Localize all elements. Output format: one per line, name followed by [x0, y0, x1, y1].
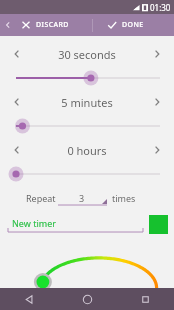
button[interactable]: New timer — [8, 213, 143, 235]
staticText: DISCARD — [36, 20, 69, 30]
button[interactable]: Recent apps — [116, 288, 174, 310]
button[interactable]: Decrease — [0, 88, 34, 116]
button[interactable]: Decrease — [0, 40, 34, 68]
button[interactable]: Home — [58, 288, 116, 310]
button[interactable]: Decrease — [0, 136, 34, 164]
button[interactable]: Increase — [140, 88, 174, 116]
button[interactable]: DONE — [99, 14, 174, 36]
button[interactable]: Increase — [140, 136, 174, 164]
button[interactable]: Back — [0, 288, 58, 310]
staticText: 0 hours — [67, 143, 107, 158]
staticText: 3 — [79, 192, 85, 204]
staticText: DONE — [122, 20, 144, 30]
button[interactable]: Increase — [140, 40, 174, 68]
staticText: Repeat — [26, 192, 56, 204]
button[interactable]: DISCARD — [0, 14, 75, 36]
button[interactable]: 5 minutes — [0, 116, 174, 136]
button[interactable]: 3 — [56, 189, 108, 207]
staticText: 5 minutes — [61, 95, 113, 110]
button[interactable]: 0 hours — [0, 164, 174, 184]
button[interactable]: 30 seconds — [0, 68, 174, 88]
staticText: 30 seconds — [58, 47, 116, 62]
staticText: New timer — [12, 217, 56, 229]
staticText: 01:30 — [150, 2, 171, 13]
staticText: times — [112, 192, 136, 204]
